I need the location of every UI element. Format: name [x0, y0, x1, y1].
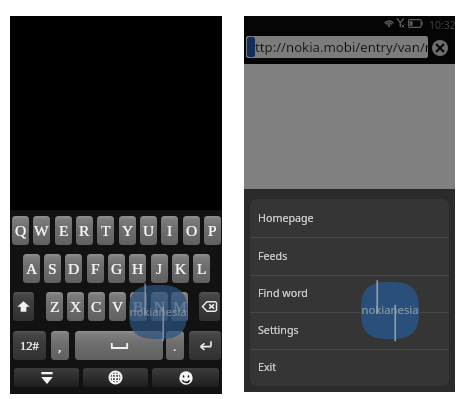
- staticText: Feeds: [258, 249, 288, 264]
- button[interactable]: 12#: [13, 331, 46, 360]
- staticText: Z: [50, 298, 60, 315]
- button[interactable]: H: [129, 254, 146, 283]
- button[interactable]: Settings: [250, 312, 449, 349]
- staticText: V: [112, 298, 124, 315]
- button[interactable]: Enter: [189, 331, 221, 360]
- button[interactable]: A: [23, 254, 40, 283]
- button[interactable]: B: [130, 292, 147, 321]
- staticText: L: [197, 260, 207, 277]
- staticText: D: [68, 260, 80, 277]
- staticText: R: [79, 222, 90, 239]
- button[interactable]: R: [76, 216, 93, 245]
- button[interactable]: W: [33, 216, 50, 245]
- button[interactable]: E: [55, 216, 72, 245]
- staticText: E: [59, 222, 69, 239]
- button[interactable]: X: [67, 292, 84, 321]
- staticText: X: [70, 298, 82, 315]
- button[interactable]: Q: [12, 216, 29, 245]
- button[interactable]: Find word: [250, 275, 449, 312]
- staticText: B: [133, 298, 144, 315]
- button[interactable]: O: [183, 216, 200, 245]
- staticText: O: [186, 222, 198, 239]
- staticText: I: [167, 222, 173, 239]
- staticText: W: [34, 222, 49, 239]
- button[interactable]: P: [204, 216, 221, 245]
- staticText: G: [111, 260, 123, 277]
- staticText: C: [91, 298, 102, 315]
- staticText: K: [175, 260, 187, 277]
- button[interactable]: Space: [75, 331, 163, 360]
- button[interactable]: T: [97, 216, 114, 245]
- button[interactable]: K: [172, 254, 189, 283]
- button[interactable]: I: [161, 216, 178, 245]
- staticText: Q: [15, 222, 27, 239]
- staticText: Settings: [258, 323, 299, 338]
- button[interactable]: Y: [119, 216, 136, 245]
- staticText: S: [48, 260, 57, 277]
- staticText: Homepage: [258, 211, 314, 226]
- button[interactable]: Close: [432, 40, 448, 56]
- staticText: Exit: [258, 360, 277, 375]
- button[interactable]: ,: [51, 331, 69, 360]
- staticText: nokianesia: [129, 304, 187, 319]
- staticText: T: [101, 222, 111, 239]
- button[interactable]: G: [108, 254, 125, 283]
- button[interactable]: Homepage: [250, 199, 449, 237]
- staticText: 10:32: [429, 18, 456, 32]
- button[interactable]: ttp://nokia.mobi/entry/van/m: [246, 36, 428, 58]
- button[interactable]: S: [44, 254, 61, 283]
- staticText: A: [26, 260, 38, 277]
- button[interactable]: L: [193, 254, 210, 283]
- button[interactable]: J: [151, 254, 168, 283]
- button[interactable]: Language: [83, 368, 148, 387]
- button[interactable]: U: [140, 216, 157, 245]
- button[interactable]: C: [88, 292, 105, 321]
- staticText: H: [132, 260, 144, 277]
- staticText: P: [208, 222, 217, 239]
- staticText: ,: [58, 339, 62, 353]
- button[interactable]: D: [65, 254, 82, 283]
- staticText: .: [173, 339, 177, 353]
- staticText: ttp://nokia.mobi/entry/van/m: [255, 38, 428, 56]
- button[interactable]: F: [87, 254, 104, 283]
- button[interactable]: Z: [46, 292, 63, 321]
- button[interactable]: Feeds: [250, 237, 449, 275]
- button[interactable]: Emoji: [152, 368, 219, 387]
- staticText: U: [143, 222, 155, 239]
- button[interactable]: V: [109, 292, 126, 321]
- staticText: nokianesia: [361, 302, 419, 317]
- staticText: Y: [122, 222, 134, 239]
- staticText: J: [156, 260, 163, 277]
- staticText: N: [154, 298, 166, 315]
- button[interactable]: Shift: [13, 292, 34, 321]
- button[interactable]: .: [166, 331, 184, 360]
- button[interactable]: Hide keyboard: [14, 368, 79, 387]
- staticText: 12#: [20, 339, 39, 353]
- button[interactable]: N: [151, 292, 168, 321]
- button[interactable]: Backspace: [199, 292, 220, 321]
- staticText: M: [173, 298, 187, 315]
- staticText: Find word: [258, 286, 308, 301]
- button[interactable]: Exit: [250, 349, 449, 386]
- button[interactable]: M: [171, 292, 188, 321]
- staticText: F: [91, 260, 100, 277]
